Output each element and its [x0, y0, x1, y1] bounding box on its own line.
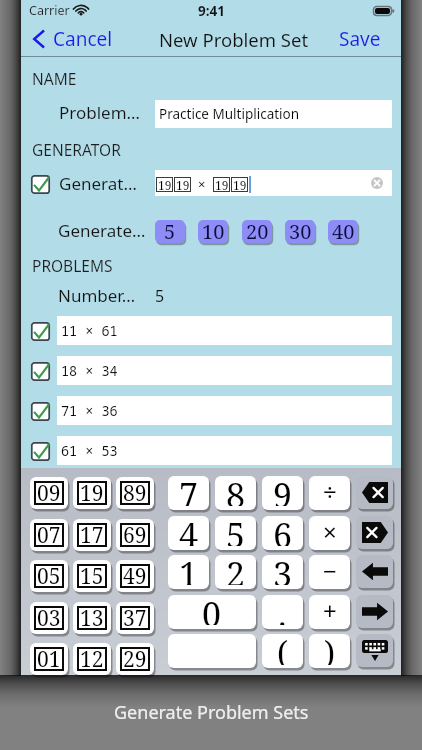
button[interactable]: Toggle: [31, 402, 50, 421]
staticText: Cancel: [53, 26, 113, 52]
button[interactable]: 1: [168, 555, 209, 589]
button[interactable]: right: [356, 595, 393, 628]
staticText: ×: [198, 175, 206, 193]
button[interactable]: 17: [77, 523, 107, 547]
staticText: Generate Problem Sets: [114, 700, 309, 725]
staticText: 19: [158, 177, 172, 192]
button[interactable]: Cancel: [33, 26, 113, 52]
staticText: Generat…: [59, 172, 137, 195]
button[interactable]: 69: [120, 523, 150, 547]
button[interactable]: 15: [77, 564, 107, 588]
button[interactable]: ): [309, 634, 350, 668]
staticText: Generate…: [58, 219, 146, 242]
button[interactable]: 6: [262, 516, 303, 550]
staticText: 13: [80, 604, 104, 628]
button[interactable]: 9: [262, 476, 303, 510]
button[interactable]: left: [356, 555, 393, 588]
staticText: 3: [273, 555, 293, 585]
staticText: 09: [37, 479, 61, 503]
button[interactable]: 13: [77, 606, 107, 630]
staticText: 03: [37, 604, 61, 628]
staticText: 89: [123, 479, 147, 503]
staticText: 1: [179, 555, 199, 585]
button[interactable]: 19: [77, 481, 107, 505]
button[interactable]: Toggle: [21, 316, 401, 345]
button[interactable]: 5: [155, 220, 185, 243]
button[interactable]: 09: [34, 481, 64, 505]
button[interactable]: Toggle: [21, 396, 401, 425]
staticText: 5: [164, 220, 176, 241]
button[interactable]: backspace: [356, 476, 393, 509]
button[interactable]: 37: [120, 606, 150, 630]
button[interactable]: Clear text: [371, 177, 383, 189]
button[interactable]: 0: [168, 595, 256, 629]
button[interactable]: 2: [215, 555, 256, 589]
button[interactable]: 05: [34, 564, 64, 588]
button[interactable]: Toggle: [31, 322, 50, 341]
staticText: 40: [332, 220, 355, 241]
button[interactable]: 4: [168, 516, 209, 550]
button[interactable]: Save: [339, 26, 381, 52]
button[interactable]: Toggle: [31, 362, 50, 381]
button[interactable]: .: [262, 595, 303, 629]
button[interactable]: 7: [168, 476, 209, 510]
button[interactable]: (: [262, 634, 303, 668]
button[interactable]: delete: [356, 516, 393, 549]
button[interactable]: −: [309, 555, 350, 589]
button[interactable]: 19: [155, 170, 392, 196]
button[interactable]: Toggle: [21, 356, 401, 385]
staticText: 01: [37, 645, 61, 669]
staticText: 7: [179, 476, 199, 506]
staticText: 6: [273, 516, 293, 546]
button[interactable]: 12: [77, 647, 107, 671]
staticText: 37: [123, 604, 147, 628]
staticText: 4: [179, 516, 199, 546]
staticText: New Problem Set: [159, 27, 309, 52]
button[interactable]: 03: [34, 606, 64, 630]
button[interactable]: 29: [120, 647, 150, 671]
staticText: (: [277, 634, 289, 665]
staticText: +: [323, 595, 337, 627]
button[interactable]: Toggle: [31, 175, 50, 194]
staticText: Carrier: [29, 2, 70, 19]
staticText: 2: [226, 555, 246, 585]
staticText: 69: [123, 521, 147, 545]
staticText: 17: [80, 521, 104, 545]
staticText: −: [323, 555, 337, 587]
button[interactable]: 30: [285, 220, 315, 243]
button[interactable]: 5: [215, 516, 256, 550]
staticText: 11 × 61: [61, 322, 118, 340]
button[interactable]: Practice Multiplication: [155, 100, 392, 128]
button[interactable]: 01: [34, 647, 64, 671]
button[interactable]: 89: [120, 481, 150, 505]
button[interactable]: 8: [215, 476, 256, 510]
staticText: 19: [176, 177, 190, 192]
button[interactable]: 3: [262, 555, 303, 589]
staticText: 18 × 34: [61, 362, 118, 380]
button[interactable]: 40: [328, 220, 358, 243]
button[interactable]: 49: [120, 564, 150, 588]
button[interactable]: 20: [242, 220, 272, 243]
staticText: 12: [80, 645, 104, 669]
button[interactable]: 10: [198, 220, 228, 243]
button[interactable]: 07: [34, 523, 64, 547]
staticText: 15: [80, 562, 104, 586]
staticText: 8: [226, 476, 246, 506]
button[interactable]: Toggle: [31, 442, 50, 461]
staticText: 0: [202, 595, 222, 625]
staticText: GENERATOR: [32, 139, 121, 160]
button[interactable]: ×: [309, 516, 350, 550]
staticText: ÷: [323, 476, 337, 508]
staticText: 5: [226, 516, 246, 546]
staticText: .: [278, 595, 287, 625]
button[interactable]: Toggle: [21, 436, 401, 465]
button[interactable]: ÷: [309, 476, 350, 510]
staticText: Practice Multiplication: [159, 105, 300, 123]
staticText: NAME: [32, 68, 77, 89]
staticText: Problem…: [59, 101, 141, 124]
button[interactable]: [168, 634, 256, 668]
button[interactable]: +: [309, 595, 350, 629]
staticText: 71 × 36: [61, 402, 118, 420]
staticText: 07: [37, 521, 61, 545]
button[interactable]: hide: [356, 634, 393, 667]
